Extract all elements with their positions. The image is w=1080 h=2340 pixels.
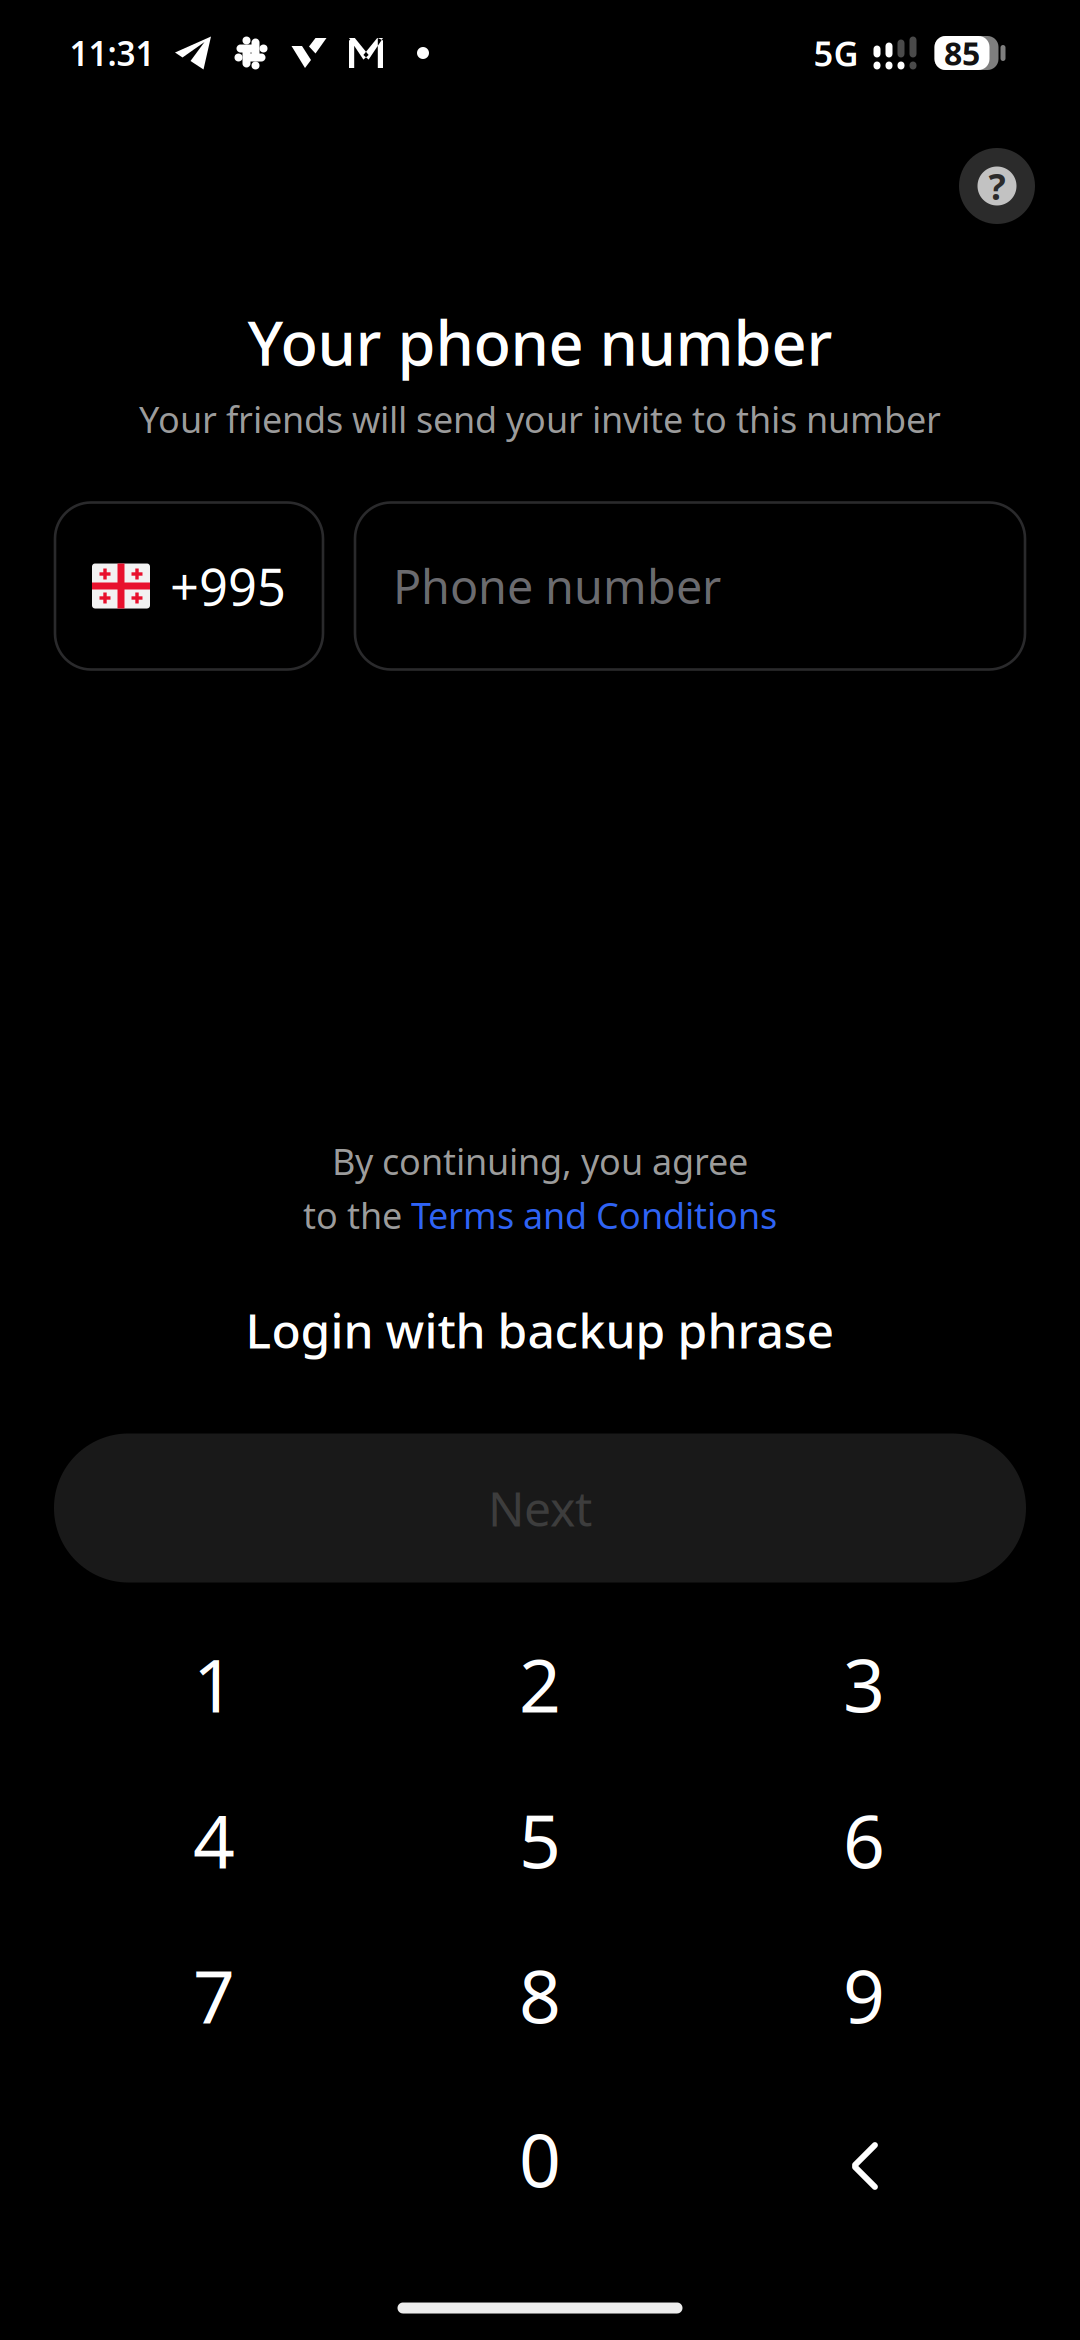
staticText: to the — [303, 1191, 411, 1239]
button[interactable]: 6 — [724, 1762, 1004, 1918]
staticText: 9 — [843, 1946, 885, 2044]
button[interactable]: 2 — [400, 1606, 680, 1762]
button[interactable]: 5 — [400, 1762, 680, 1918]
staticText: Your friends will send your invite to th… — [139, 395, 941, 443]
staticText: +995 — [170, 552, 286, 620]
button[interactable]: 4 — [74, 1762, 354, 1918]
staticText: Terms and Conditions — [411, 1191, 777, 1239]
button[interactable]: Terms and Conditions — [411, 1191, 777, 1239]
button[interactable]: Help — [959, 148, 1035, 224]
button[interactable]: Login with backup phrase — [90, 1295, 990, 1365]
staticText: 8 — [519, 1946, 561, 2044]
staticText: 2 — [519, 1635, 561, 1733]
staticText: 5G — [813, 30, 858, 76]
button[interactable]: Phone number — [355, 502, 1025, 669]
staticText: 4 — [193, 1791, 235, 1889]
staticText: By continuing, you agree — [332, 1137, 748, 1185]
staticText: 0 — [519, 2110, 561, 2208]
button[interactable]: Country code +995 — [55, 502, 323, 669]
button[interactable]: 8 — [400, 1917, 680, 2073]
button[interactable]: 3 — [724, 1606, 1004, 1762]
staticText: 3 — [843, 1635, 885, 1733]
staticText: Your phone number — [247, 301, 832, 383]
button[interactable]: 7 — [74, 1917, 354, 2073]
staticText: 85 — [944, 32, 980, 74]
staticText: 1 — [193, 1635, 235, 1733]
button[interactable]: 1 — [74, 1606, 354, 1762]
staticText: Next — [488, 1476, 592, 1540]
button[interactable]: Next — [54, 1433, 1026, 1582]
button[interactable]: 0 — [400, 2081, 680, 2237]
button[interactable]: Delete — [724, 2088, 1004, 2244]
staticText: Phone number — [393, 555, 721, 617]
staticText: 11:31 — [69, 31, 154, 75]
button[interactable]: 9 — [724, 1917, 1004, 2073]
staticText: 6 — [843, 1791, 885, 1889]
staticText: 5 — [519, 1791, 561, 1889]
staticText: 7 — [193, 1946, 235, 2044]
staticText: Login with backup phrase — [245, 1298, 834, 1362]
staticText: ? — [988, 162, 1005, 210]
